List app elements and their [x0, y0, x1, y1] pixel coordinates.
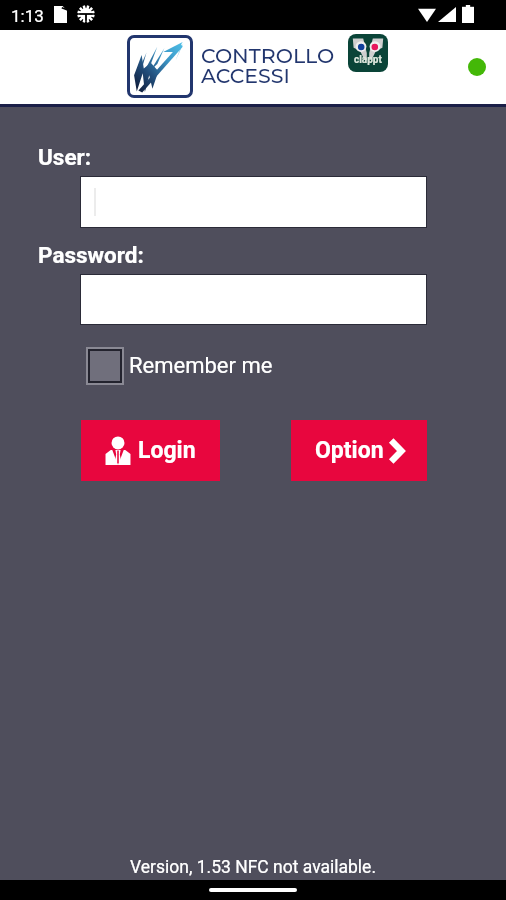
staticText: Remember me	[129, 353, 273, 379]
staticText: CONTROLLO	[201, 43, 335, 68]
staticText: Password:	[38, 242, 144, 268]
staticText: User:	[38, 144, 92, 170]
staticText: Option	[315, 437, 384, 464]
button[interactable]: Connection status	[468, 58, 486, 76]
button[interactable]: Remember me	[86, 347, 273, 385]
button[interactable]: Option	[291, 420, 427, 481]
staticText: clappt	[354, 54, 382, 66]
button[interactable]: Login	[81, 420, 220, 481]
staticText: ACCESSI	[201, 63, 290, 88]
staticText: Login	[138, 437, 196, 464]
staticText: Version, 1.53 NFC not available.	[0, 857, 506, 878]
staticText: 1:13	[11, 6, 44, 26]
